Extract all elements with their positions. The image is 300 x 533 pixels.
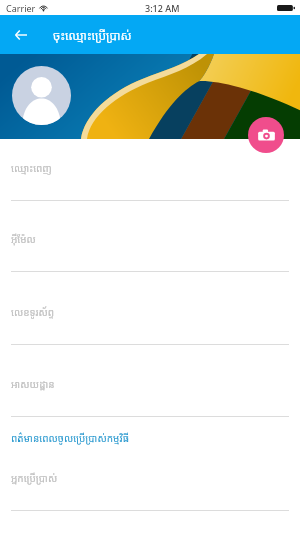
staticText: អាសយដ្ឋាន (11, 377, 55, 391)
button[interactable]: ឈ្មោះពេញ (0, 139, 300, 201)
staticText: អ៊ីម៉ែល (11, 232, 36, 246)
button[interactable]: Back (8, 22, 33, 47)
staticText: 3:12 AM (145, 2, 180, 14)
staticText: Carrier (6, 2, 36, 14)
button[interactable]: អ៊ីម៉ែល (0, 201, 300, 272)
staticText: អ្នកប្រើប្រាស់ (11, 471, 58, 485)
staticText: ឈ្មោះពេញ (11, 161, 52, 175)
button[interactable]: Profile photo (12, 66, 71, 125)
staticText: ពត៌មានពេលចូលប្រើប្រាស់កម្មវិធី (11, 431, 130, 445)
staticText: ចុះឈ្មោះប្រើប្រាស់ (53, 27, 132, 43)
button[interactable]: លេខទូរស័ព្ទ (0, 272, 300, 345)
button[interactable]: អ្នកប្រើប្រាស់ (0, 461, 300, 511)
staticText: លេខទូរស័ព្ទ (11, 305, 55, 319)
button[interactable]: អាសយដ្ឋាន (0, 345, 300, 417)
button[interactable]: Take photo (248, 117, 284, 153)
